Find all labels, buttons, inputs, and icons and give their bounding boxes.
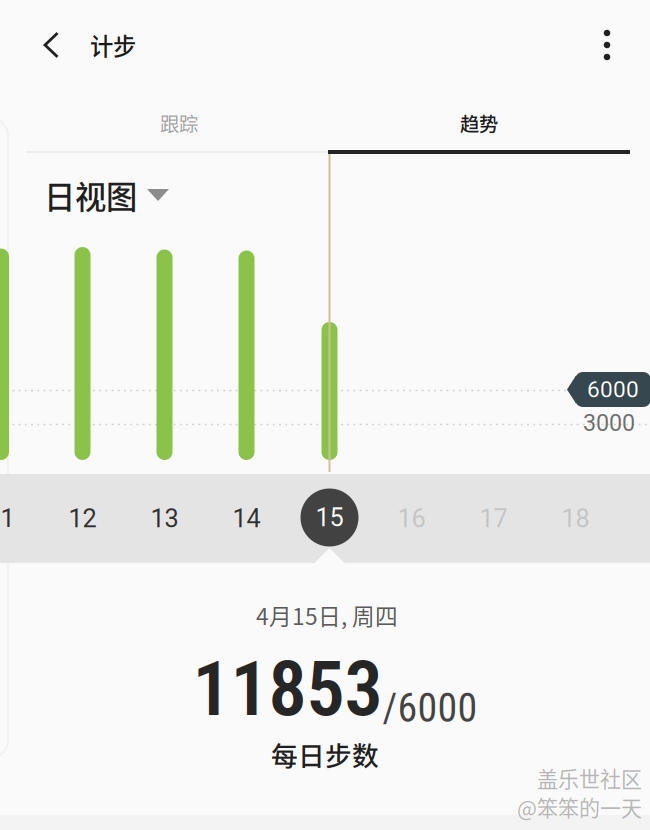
button[interactable]: More options [583,21,631,69]
staticText: 计步 [90,28,136,62]
staticText: @笨笨的一天 [517,792,642,822]
staticText: 12 [68,504,96,533]
button[interactable]: 日视图 [44,173,169,217]
staticText: 16 [397,504,425,533]
staticText: 趋势 [460,109,498,137]
button[interactable]: 跟踪 [28,96,330,150]
staticText: 13 [150,504,178,533]
button[interactable]: 14 [205,474,287,563]
staticText: 18 [561,504,589,533]
button[interactable]: 12 [41,474,123,563]
staticText: 日视图 [44,172,137,218]
staticText: 14 [232,504,260,533]
staticText: 每日步数 [271,735,379,773]
staticText: 17 [479,504,507,533]
staticText: 15 [315,503,343,532]
staticText: 11853 [192,644,382,734]
button[interactable]: 18 [534,474,616,563]
staticText: /6000 [382,685,477,732]
staticText: 盖乐世社区 [537,763,642,793]
button[interactable]: 15 [300,488,358,546]
staticText: 11 [0,504,14,533]
staticText: 6000 [587,376,639,403]
staticText: 3000 [583,409,635,437]
button[interactable]: 13 [123,474,205,563]
button[interactable]: 16 [370,474,452,563]
staticText: 跟踪 [160,109,198,137]
button[interactable]: 17 [452,474,534,563]
button[interactable]: 11 [0,474,41,563]
button[interactable]: 趋势 [328,96,630,150]
button[interactable]: Back [27,21,75,69]
staticText: 4月15日, 周四 [256,599,398,631]
